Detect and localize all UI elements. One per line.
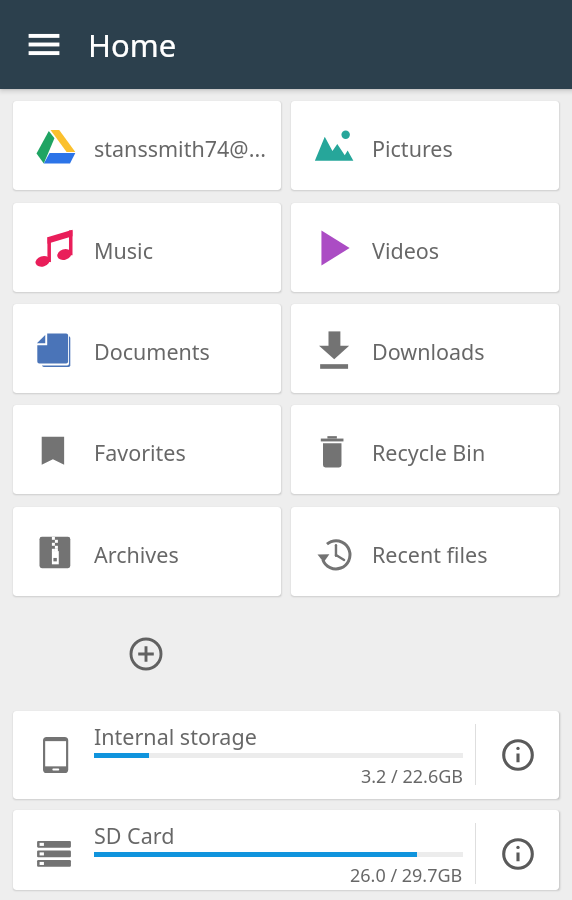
button[interactable]: Music [13,203,281,292]
button[interactable]: Recycle Bin [291,405,559,494]
button[interactable]: stanssmith74@... [13,101,281,190]
staticText: 26.0 / 29.7GB [350,863,463,888]
button[interactable]: Add shortcut [123,637,169,671]
button[interactable]: Recent files [291,507,559,596]
button[interactable]: Pictures [291,101,559,190]
staticText: Recycle Bin [372,438,486,467]
staticText: Pictures [372,134,453,163]
button[interactable]: Storage details [476,711,559,799]
button[interactable]: Internal storage [13,711,559,799]
staticText: Archives [94,540,179,569]
staticText: Downloads [372,337,485,366]
staticText: Recent files [372,540,488,569]
staticText: Internal storage [94,722,257,751]
staticText: 3.2 / 22.6GB [361,764,463,789]
staticText: Videos [372,236,440,265]
staticText: Documents [94,337,210,366]
button[interactable]: SD Card [13,810,559,890]
button[interactable]: Documents [13,304,281,393]
button[interactable]: Downloads [291,304,559,393]
staticText: stanssmith74@... [94,134,266,163]
button[interactable]: Archives [13,507,281,596]
button[interactable]: Videos [291,203,559,292]
staticText: SD Card [94,821,175,850]
staticText: Music [94,236,153,265]
button[interactable]: Storage details [476,810,559,890]
staticText: Home [88,24,177,66]
button[interactable]: Open navigation menu [14,15,74,75]
button[interactable]: Favorites [13,405,281,494]
staticText: Favorites [94,438,186,467]
